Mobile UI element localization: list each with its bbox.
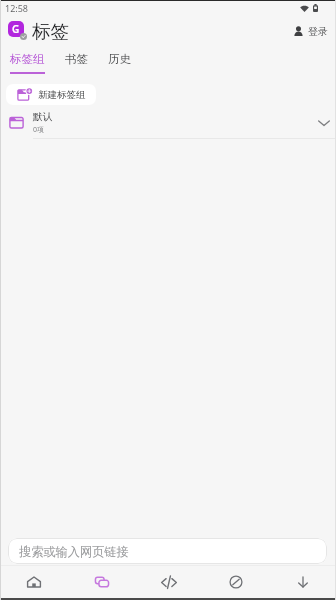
button[interactable]: 历史	[98, 47, 141, 74]
button[interactable]: 默认	[0, 107, 336, 138]
button[interactable]: 新建标签组	[6, 84, 96, 105]
button[interactable]: 搜索或输入网页链接	[8, 538, 327, 564]
staticText: 搜索或输入网页链接	[19, 544, 129, 559]
button[interactable]: Downloads	[269, 566, 336, 597]
button[interactable]: 书签	[55, 47, 98, 74]
staticText: 登录	[308, 25, 328, 38]
button[interactable]: Tabs	[68, 566, 135, 597]
staticText: 默认	[33, 111, 53, 123]
staticText: 标签	[32, 20, 69, 43]
button[interactable]: Developer tools	[135, 566, 202, 597]
staticText: 书签	[65, 52, 88, 66]
staticText: 0项	[33, 125, 45, 135]
button[interactable]: 标签组	[0, 47, 55, 74]
button[interactable]: Home	[0, 566, 68, 597]
staticText: G	[12, 22, 20, 36]
staticText: 12:58	[5, 2, 29, 14]
staticText: 标签组	[10, 52, 45, 66]
staticText: 新建标签组	[38, 89, 86, 101]
button[interactable]: Block	[202, 566, 269, 597]
button[interactable]: 登录	[289, 20, 332, 43]
staticText: 历史	[108, 52, 131, 66]
